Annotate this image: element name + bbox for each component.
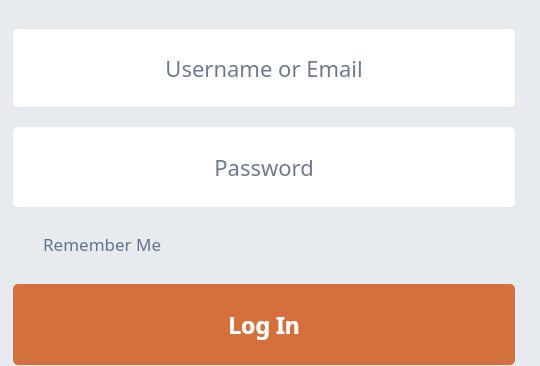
- button[interactable]: Username or Email: [13, 29, 515, 107]
- button[interactable]: Password: [13, 127, 515, 207]
- button[interactable]: Log In: [13, 284, 515, 365]
- staticText: Password: [214, 152, 314, 182]
- button[interactable]: Remember Me: [43, 231, 162, 258]
- staticText: Log In: [228, 309, 300, 340]
- staticText: Username or Email: [165, 53, 363, 83]
- staticText: Remember Me: [43, 233, 162, 256]
